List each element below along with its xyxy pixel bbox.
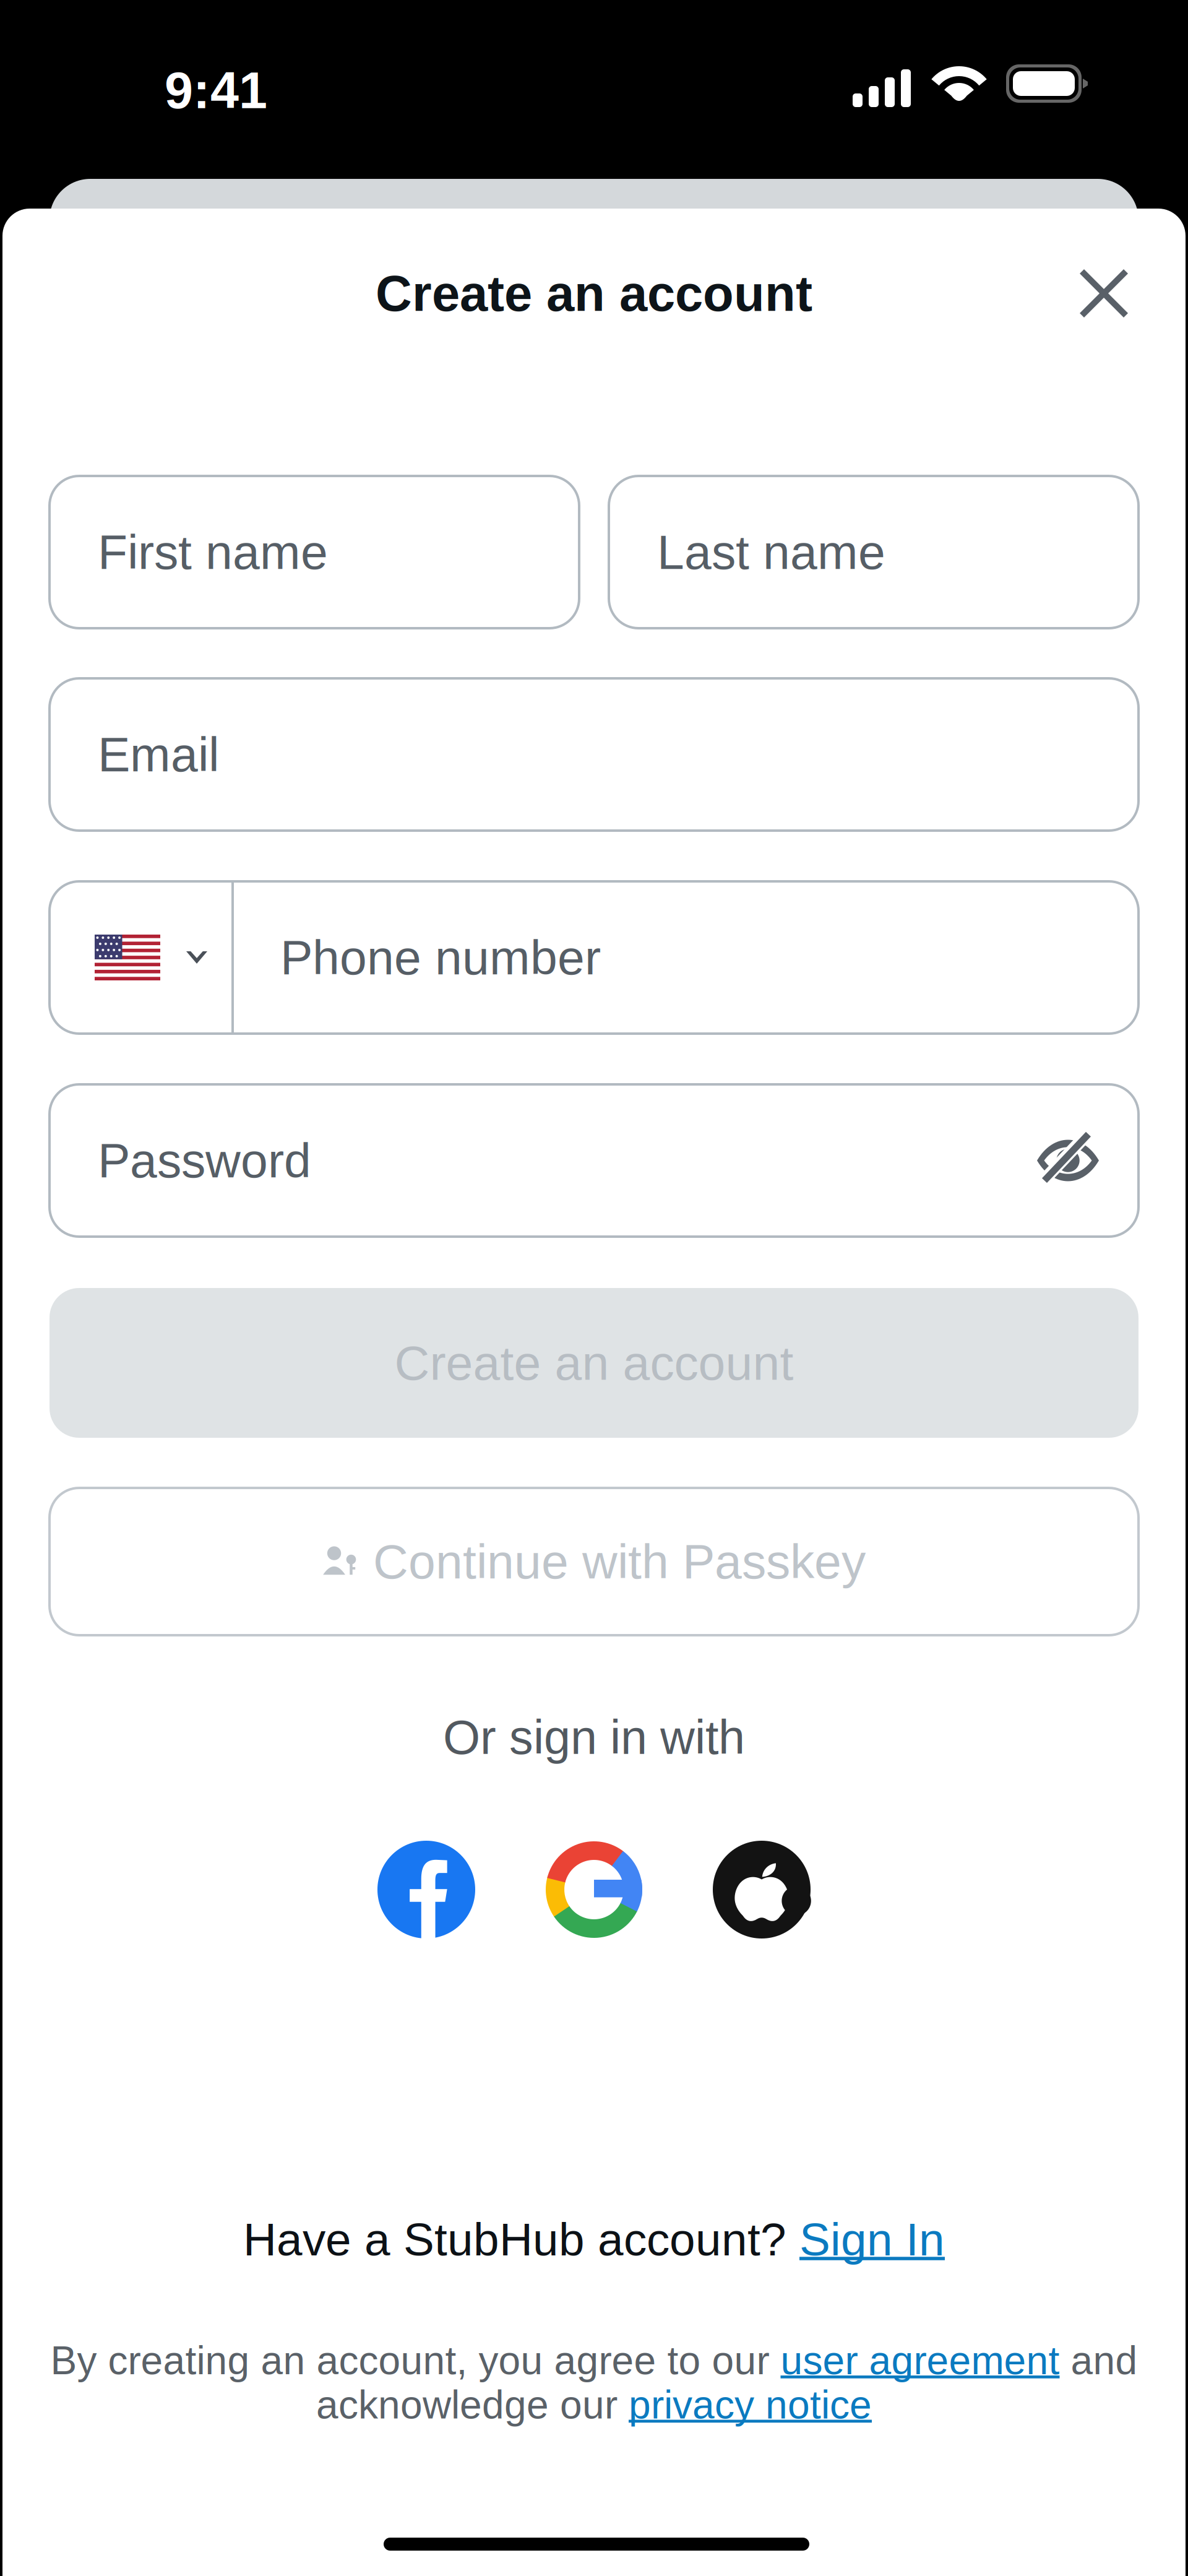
button[interactable]: Sign In [799, 2213, 945, 2265]
button[interactable]: Show password [1022, 1114, 1114, 1207]
button[interactable]: Close [1057, 247, 1150, 340]
staticText: and [1060, 2338, 1138, 2383]
button[interactable]: Sign in with Apple [713, 1841, 811, 1938]
staticText: user agreement [781, 2338, 1060, 2383]
staticText: By creating an account, you agree to our [50, 2338, 781, 2383]
button[interactable]: Continue with Passkey [49, 1488, 1138, 1635]
staticText: 9:41 [165, 62, 267, 119]
button[interactable]: user agreement [781, 2338, 1060, 2383]
staticText: Create an account [376, 265, 812, 322]
staticText: First name [98, 525, 328, 579]
staticText: acknowledge our [316, 2383, 629, 2427]
button[interactable]: privacy notice [629, 2383, 872, 2427]
staticText: Have a StubHub account? [243, 2213, 799, 2265]
staticText: Email [98, 727, 219, 782]
button[interactable]: Create an account [49, 1288, 1138, 1438]
staticText: privacy notice [629, 2383, 872, 2427]
staticText: Phone number [280, 930, 601, 985]
staticText: Sign In [799, 2213, 945, 2265]
button[interactable]: Select country code [49, 881, 231, 1034]
staticText: Or sign in with [443, 1711, 745, 1764]
staticText: Password [98, 1133, 311, 1188]
button[interactable]: Sign in with Google [546, 1841, 642, 1938]
staticText: Create an account [394, 1336, 794, 1390]
staticText: Continue with Passkey [373, 1534, 866, 1589]
staticText: Last name [657, 525, 885, 579]
button[interactable]: Sign in with Facebook [377, 1841, 475, 1938]
